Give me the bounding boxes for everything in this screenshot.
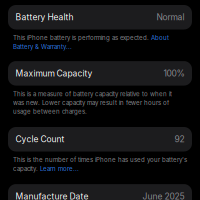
staticText: 100% [163, 68, 184, 78]
button[interactable]: Manufacture Date [8, 184, 192, 200]
staticText: capacity. [13, 165, 40, 172]
button[interactable]: Cycle Count [8, 127, 192, 151]
staticText: This is the number of times iPhone has u… [13, 156, 187, 163]
staticText: Maximum Capacity [15, 68, 92, 78]
staticText: Cycle Count [15, 134, 64, 144]
staticText: This iPhone battery is performing as exp… [13, 34, 151, 41]
button[interactable]: Maximum Capacity [8, 61, 192, 86]
staticText: June 2025 [142, 191, 184, 200]
staticText: was new. Lower capacity may result in fe… [13, 99, 169, 106]
staticText: Manufacture Date [15, 191, 88, 200]
staticText: Battery & Warranty... [13, 43, 72, 50]
staticText: Normal [156, 12, 184, 22]
staticText: 92 [174, 134, 184, 144]
button[interactable]: Battery Health [8, 5, 192, 29]
staticText: About [151, 34, 169, 41]
staticText: Learn more... [40, 165, 79, 172]
staticText: Battery Health [15, 12, 73, 22]
staticText: This is a measure of battery capacity re… [13, 90, 172, 98]
staticText: usage between charges. [13, 108, 87, 115]
